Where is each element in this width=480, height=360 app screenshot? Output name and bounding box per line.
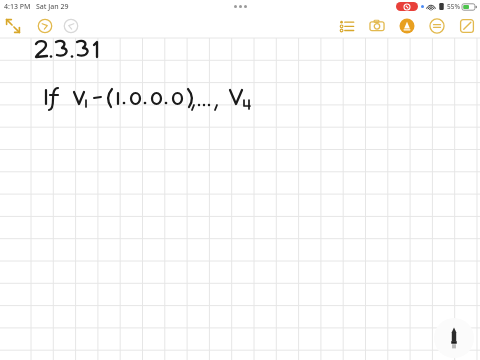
- button[interactable]: Camera: [366, 15, 388, 37]
- staticText: 55%: [447, 2, 460, 11]
- button[interactable]: Collapse: [2, 15, 24, 37]
- button[interactable]: Redo: [60, 15, 82, 37]
- button[interactable]: Outline: [336, 15, 358, 37]
- button[interactable]: Highlight colour: [396, 15, 418, 37]
- staticText: 4:13 PM Sat Jan 29: [4, 2, 69, 12]
- button[interactable]: Pen tool: [434, 318, 474, 358]
- button[interactable]: Eraser: [426, 15, 448, 37]
- button[interactable]: Compose: [456, 15, 478, 37]
- button[interactable]: Undo: [34, 15, 56, 37]
